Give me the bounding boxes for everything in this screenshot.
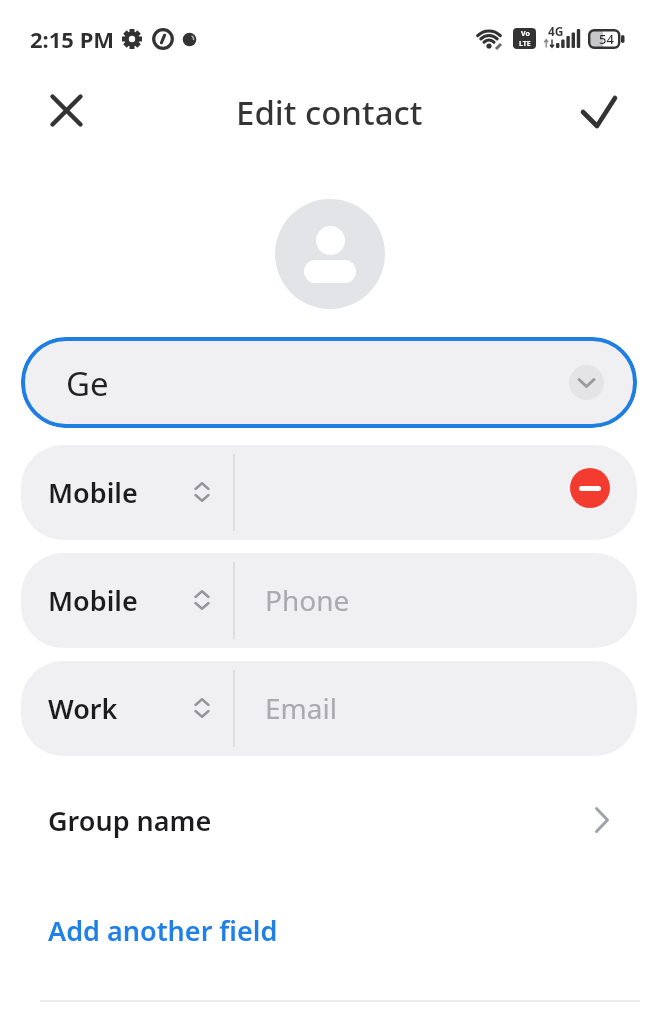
button[interactable] xyxy=(44,88,88,132)
staticText: Group name xyxy=(48,802,212,839)
staticText: Mobile xyxy=(48,582,138,619)
staticText: Work xyxy=(48,690,118,727)
staticText: Phone xyxy=(265,581,350,619)
staticText: 4G xyxy=(548,23,564,39)
staticText: LTE xyxy=(519,39,531,49)
button[interactable]: Add another field xyxy=(40,900,300,960)
button[interactable] xyxy=(574,88,622,136)
button[interactable]: Mobile xyxy=(21,553,637,648)
button[interactable] xyxy=(570,468,610,508)
button[interactable] xyxy=(275,199,385,309)
button[interactable]: Mobile xyxy=(21,445,637,540)
staticText: 2:15 PM xyxy=(30,24,115,54)
button[interactable]: Group name xyxy=(21,785,637,855)
staticText: Mobile xyxy=(48,474,138,511)
button[interactable] xyxy=(569,365,604,400)
staticText: 54 xyxy=(599,30,614,48)
staticText: Ge xyxy=(66,361,109,406)
button[interactable]: Work xyxy=(21,661,637,756)
button[interactable]: Ge xyxy=(21,337,637,428)
staticText: Vo xyxy=(521,29,530,39)
staticText: Email xyxy=(265,689,337,727)
staticText: Add another field xyxy=(48,912,278,949)
staticText: Edit contact xyxy=(236,90,423,135)
